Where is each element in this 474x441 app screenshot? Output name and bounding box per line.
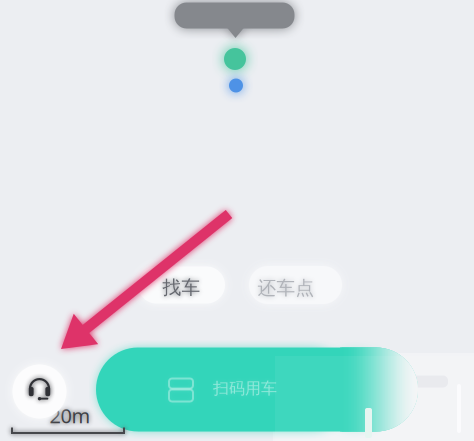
staticText: 还车点 bbox=[257, 276, 314, 299]
button[interactable]: 扫码用车 bbox=[96, 347, 418, 431]
button[interactable]: 找车 bbox=[138, 266, 225, 303]
staticText: 找车 bbox=[162, 276, 200, 299]
staticText: 扫码用车 bbox=[213, 379, 277, 398]
button[interactable]: Customer service bbox=[12, 364, 66, 418]
button[interactable]: 还车点 bbox=[249, 266, 342, 304]
staticText: 20m bbox=[49, 402, 90, 429]
